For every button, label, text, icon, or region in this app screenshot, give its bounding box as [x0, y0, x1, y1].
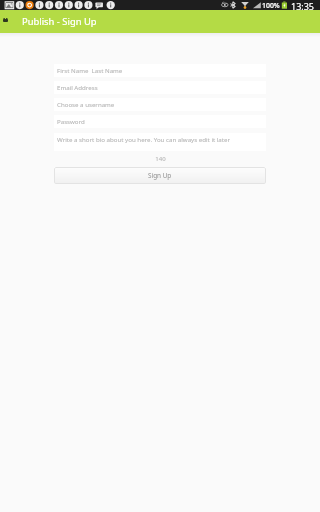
staticText: First Name Last Name — [57, 66, 123, 74]
button[interactable]: Sign Up — [54, 167, 266, 184]
staticText: Write a short bio about you here. You ca… — [57, 135, 231, 143]
button[interactable]: Choose a username — [54, 98, 266, 111]
staticText: Publish - Sign Up — [22, 15, 97, 28]
staticText: Sign Up — [148, 171, 172, 180]
button[interactable]: First Name Last Name — [54, 64, 266, 77]
button[interactable]: Email Address — [54, 81, 266, 94]
staticText: 13:35 — [291, 0, 315, 10]
button[interactable]: App logo — [0, 15, 12, 28]
button[interactable]: Write a short bio about you here. You ca… — [54, 133, 266, 151]
staticText: Password — [57, 117, 85, 125]
staticText: 140 — [155, 155, 166, 163]
staticText: Email Address — [57, 83, 98, 91]
button[interactable]: Password — [54, 115, 266, 128]
staticText: 100% — [262, 1, 280, 10]
staticText: Choose a username — [57, 100, 115, 108]
